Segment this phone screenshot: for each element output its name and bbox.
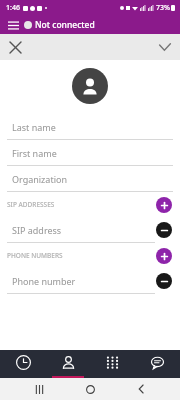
- staticText: Not connected: [35, 19, 95, 31]
- button[interactable]: Add SIP ADDRESSES: [156, 197, 172, 213]
- button[interactable]: Contact photo: [72, 68, 108, 104]
- button[interactable]: Open navigation menu: [5, 17, 21, 33]
- staticText: PHONE NUMBERS: [7, 251, 63, 260]
- button[interactable]: Cancel: [4, 36, 26, 58]
- staticText: Organization: [12, 173, 67, 185]
- staticText: Phone number: [12, 275, 76, 287]
- staticText: SIP address: [12, 224, 62, 236]
- button[interactable]: Dialpad: [90, 350, 134, 378]
- button[interactable]: Organization: [0, 166, 180, 192]
- button[interactable]: Last name: [0, 114, 180, 140]
- button[interactable]: Recent apps: [27, 378, 51, 400]
- staticText: First name: [12, 147, 57, 159]
- staticText: 73%: [156, 3, 170, 13]
- button[interactable]: Save contact: [154, 36, 176, 58]
- button[interactable]: Home: [78, 378, 102, 400]
- button[interactable]: First name: [0, 140, 180, 166]
- button[interactable]: Phone number: [12, 268, 150, 293]
- button[interactable]: Back: [129, 378, 153, 400]
- button[interactable]: SIP address: [12, 217, 150, 242]
- button[interactable]: Chat: [135, 350, 179, 378]
- button[interactable]: Remove Phone number: [156, 273, 172, 289]
- button[interactable]: Remove SIP address: [156, 222, 172, 238]
- button[interactable]: Call history: [1, 350, 45, 378]
- button[interactable]: Add PHONE NUMBERS: [156, 248, 172, 264]
- button[interactable]: Contacts: [46, 350, 90, 378]
- staticText: SIP ADDRESSES: [7, 200, 55, 209]
- staticText: Last name: [12, 121, 56, 133]
- staticText: 1:46: [6, 3, 20, 13]
